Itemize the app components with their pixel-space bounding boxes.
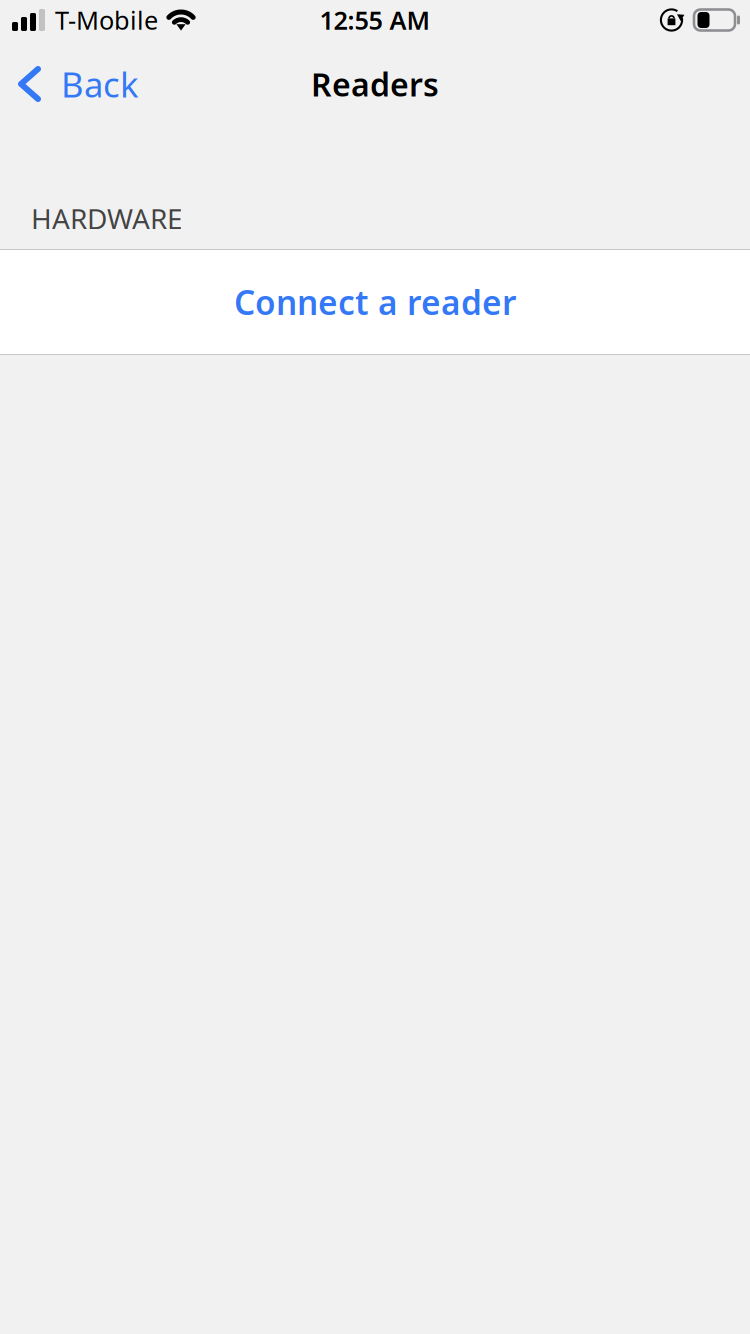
- staticText: Readers: [311, 63, 439, 105]
- staticText: 12:55 AM: [319, 3, 430, 37]
- staticText: HARDWARE: [31, 200, 183, 237]
- staticText: Connect a reader: [234, 280, 516, 324]
- staticText: Back: [61, 61, 139, 107]
- staticText: T-Mobile: [55, 3, 158, 37]
- button[interactable]: Connect a reader: [0, 250, 750, 354]
- button[interactable]: Back: [0, 40, 149, 128]
